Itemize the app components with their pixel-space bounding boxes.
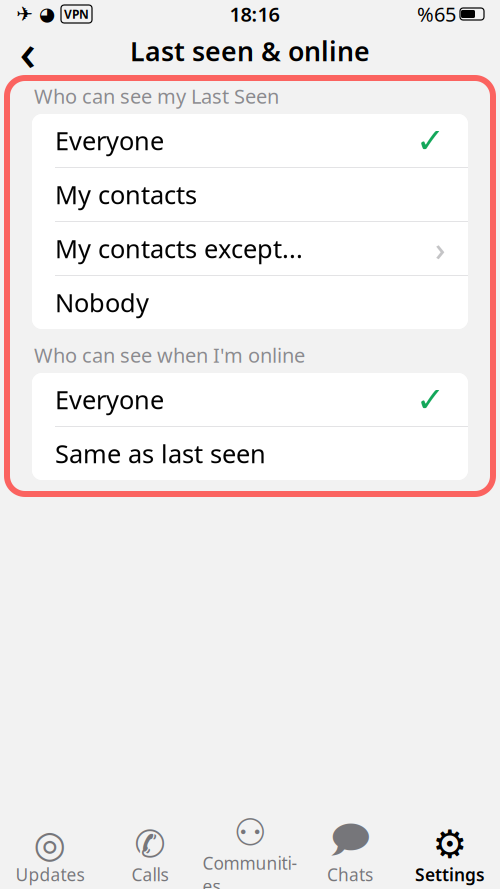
staticText: ◎	[33, 823, 66, 865]
button[interactable]: Everyone	[32, 114, 468, 168]
staticText: 🗩	[329, 813, 370, 875]
staticText: Updates	[15, 863, 84, 886]
staticText: Nobody	[55, 286, 149, 319]
button[interactable]: Same as last seen	[32, 427, 468, 480]
staticText: My contacts except...	[55, 232, 303, 265]
staticText: My contacts	[55, 178, 197, 211]
staticText: Who can see my Last Seen	[34, 83, 279, 109]
staticText: 18:16	[229, 1, 279, 27]
staticText: ✓	[416, 121, 445, 160]
button[interactable]: ⚙	[400, 820, 500, 889]
staticText: ✆	[134, 823, 165, 865]
button[interactable]: ⚇	[200, 808, 300, 889]
button[interactable]: ✆	[100, 820, 200, 889]
staticText: ›	[435, 227, 445, 270]
staticText: ✈	[16, 3, 33, 25]
staticText: Chats	[327, 863, 373, 886]
button[interactable]: Everyone	[32, 373, 468, 427]
staticText: Same as last seen	[55, 437, 266, 470]
button[interactable]: ◎	[0, 820, 100, 889]
staticText: ◕	[39, 3, 55, 25]
staticText: VPN	[64, 6, 89, 22]
button[interactable]: 🗩	[300, 820, 400, 889]
staticText: %65	[417, 1, 456, 27]
staticText: ⚇	[233, 811, 266, 854]
staticText: Communities	[202, 851, 297, 889]
staticText: Everyone	[55, 383, 164, 416]
staticText: ⚙	[432, 822, 467, 866]
button[interactable]: Nobody	[32, 276, 468, 329]
button[interactable]: My contacts except...	[32, 222, 468, 276]
staticText: ✓	[416, 380, 445, 419]
staticText: Who can see when I'm online	[34, 342, 305, 368]
staticText: Last seen & online	[130, 33, 370, 69]
staticText: Calls	[131, 863, 168, 886]
button[interactable]: Back	[6, 29, 50, 73]
staticText: Settings	[415, 863, 485, 886]
button[interactable]: My contacts	[32, 168, 468, 222]
staticText: Everyone	[55, 124, 164, 157]
staticText: ‹	[19, 17, 36, 85]
